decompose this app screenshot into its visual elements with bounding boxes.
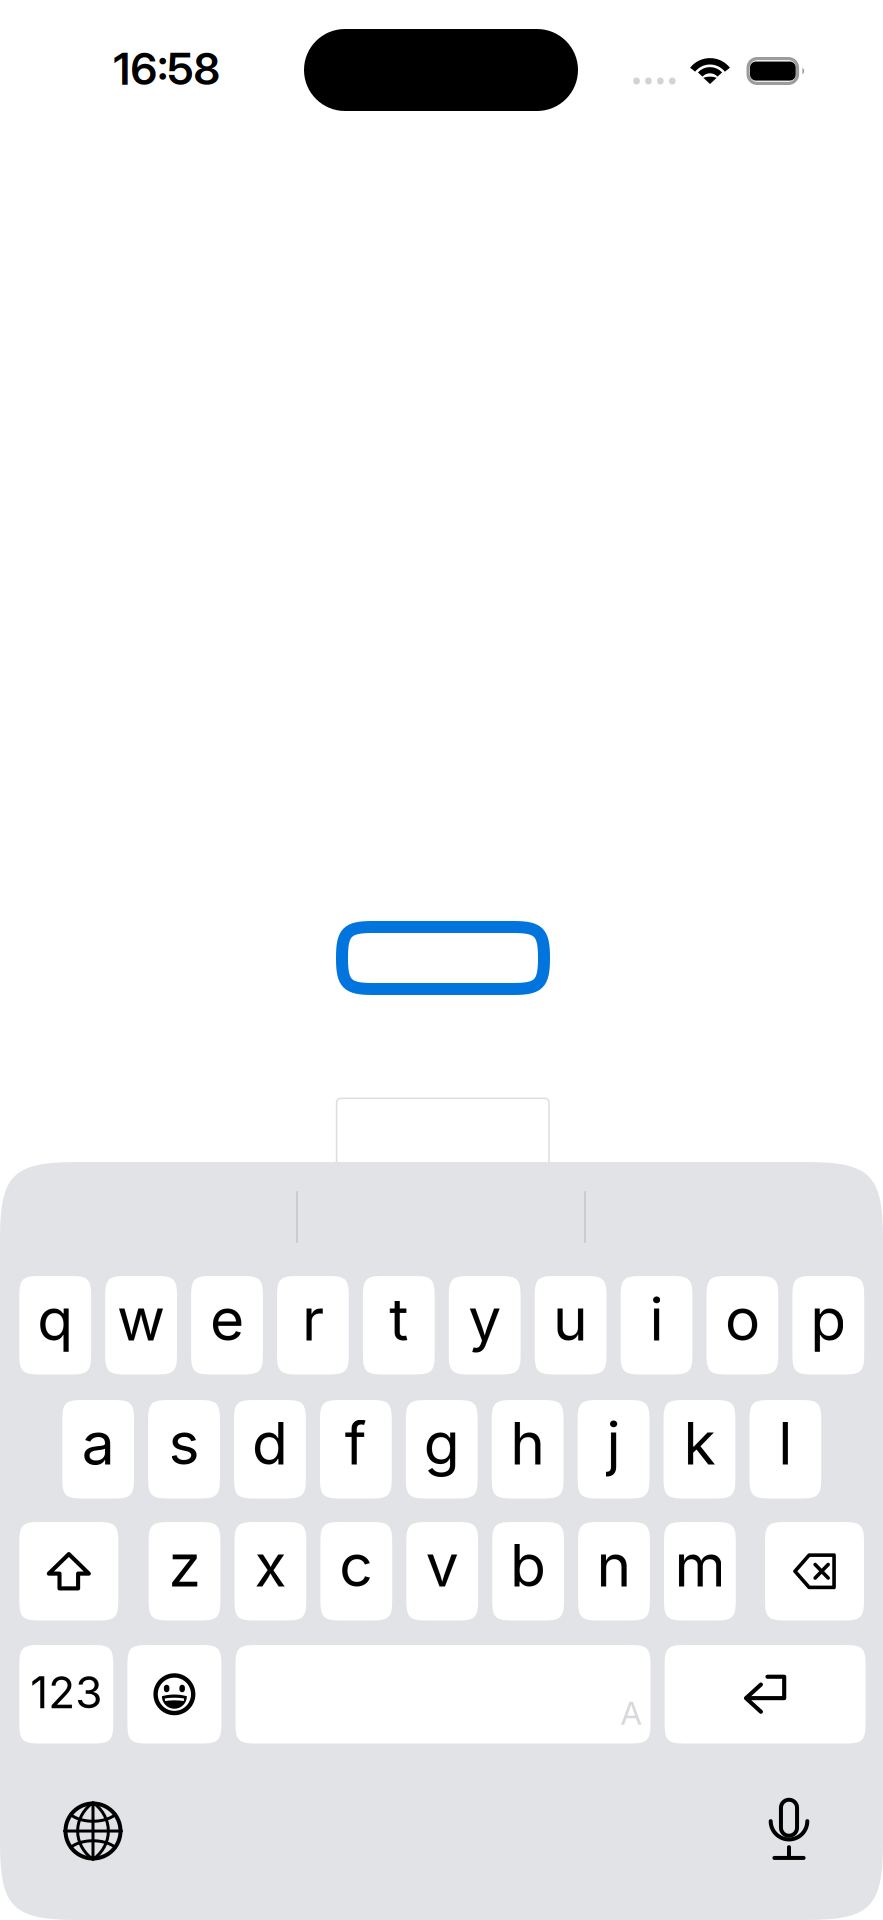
staticText: y — [468, 1284, 501, 1355]
staticText: b — [510, 1530, 546, 1601]
staticText: g — [424, 1408, 460, 1479]
button[interactable]: a — [62, 1400, 134, 1498]
staticText: s — [168, 1408, 199, 1479]
button[interactable]: v — [406, 1522, 478, 1620]
button[interactable]: u — [535, 1276, 606, 1374]
staticText: t — [389, 1284, 408, 1355]
button[interactable]: b — [492, 1522, 564, 1620]
staticText: i — [649, 1284, 663, 1355]
button[interactable]: o — [706, 1276, 778, 1374]
staticText: r — [302, 1284, 324, 1355]
staticText: q — [37, 1284, 73, 1355]
button[interactable]: h — [492, 1400, 563, 1498]
staticText: d — [252, 1408, 288, 1479]
button[interactable]: Shift — [19, 1522, 118, 1620]
staticText: c — [339, 1530, 373, 1601]
button[interactable]: l — [749, 1400, 821, 1498]
button[interactable]: g — [406, 1400, 478, 1498]
staticText: u — [553, 1284, 588, 1355]
button[interactable]: k — [663, 1400, 735, 1498]
staticText: j — [606, 1408, 620, 1479]
button[interactable]: Delete — [765, 1522, 864, 1620]
button[interactable]: e — [191, 1276, 263, 1374]
staticText: p — [810, 1284, 846, 1355]
button[interactable]: c — [320, 1522, 392, 1620]
button[interactable]: m — [664, 1522, 736, 1620]
button[interactable]: Next keyboard — [47, 1785, 139, 1877]
button[interactable]: q — [19, 1276, 91, 1374]
staticText: k — [683, 1408, 715, 1479]
staticText: z — [168, 1530, 200, 1601]
button[interactable]: z — [149, 1522, 220, 1620]
staticText: h — [510, 1408, 545, 1479]
button[interactable]: f — [320, 1400, 392, 1498]
button[interactable]: Emoji — [127, 1645, 221, 1743]
button[interactable]: 123 — [19, 1645, 113, 1743]
staticText: m — [674, 1530, 725, 1601]
button[interactable]: p — [792, 1276, 864, 1374]
button[interactable]: Return — [665, 1645, 866, 1743]
staticText: w — [117, 1284, 165, 1355]
staticText: 16:58 — [113, 42, 220, 95]
staticText: e — [210, 1284, 244, 1355]
button[interactable]: r — [277, 1276, 349, 1374]
button[interactable]: n — [578, 1522, 650, 1620]
staticText: 123 — [30, 1666, 102, 1719]
button[interactable]: y — [449, 1276, 521, 1374]
button[interactable]: d — [234, 1400, 306, 1498]
button[interactable]: w — [105, 1276, 177, 1374]
button[interactable]: i — [621, 1276, 692, 1374]
button[interactable]: j — [578, 1400, 649, 1498]
staticText: A — [620, 1694, 641, 1732]
staticText: x — [254, 1530, 286, 1601]
staticText: v — [426, 1530, 459, 1601]
staticText: o — [725, 1284, 760, 1355]
button[interactable]: x — [234, 1522, 306, 1620]
staticText: n — [596, 1530, 631, 1601]
button[interactable]: s — [148, 1400, 220, 1498]
button[interactable]: Dictate — [743, 1783, 835, 1875]
button[interactable]: t — [363, 1276, 435, 1374]
staticText: l — [778, 1408, 792, 1479]
button[interactable]: A — [235, 1645, 650, 1743]
staticText: a — [82, 1408, 115, 1479]
staticText: f — [345, 1408, 367, 1479]
